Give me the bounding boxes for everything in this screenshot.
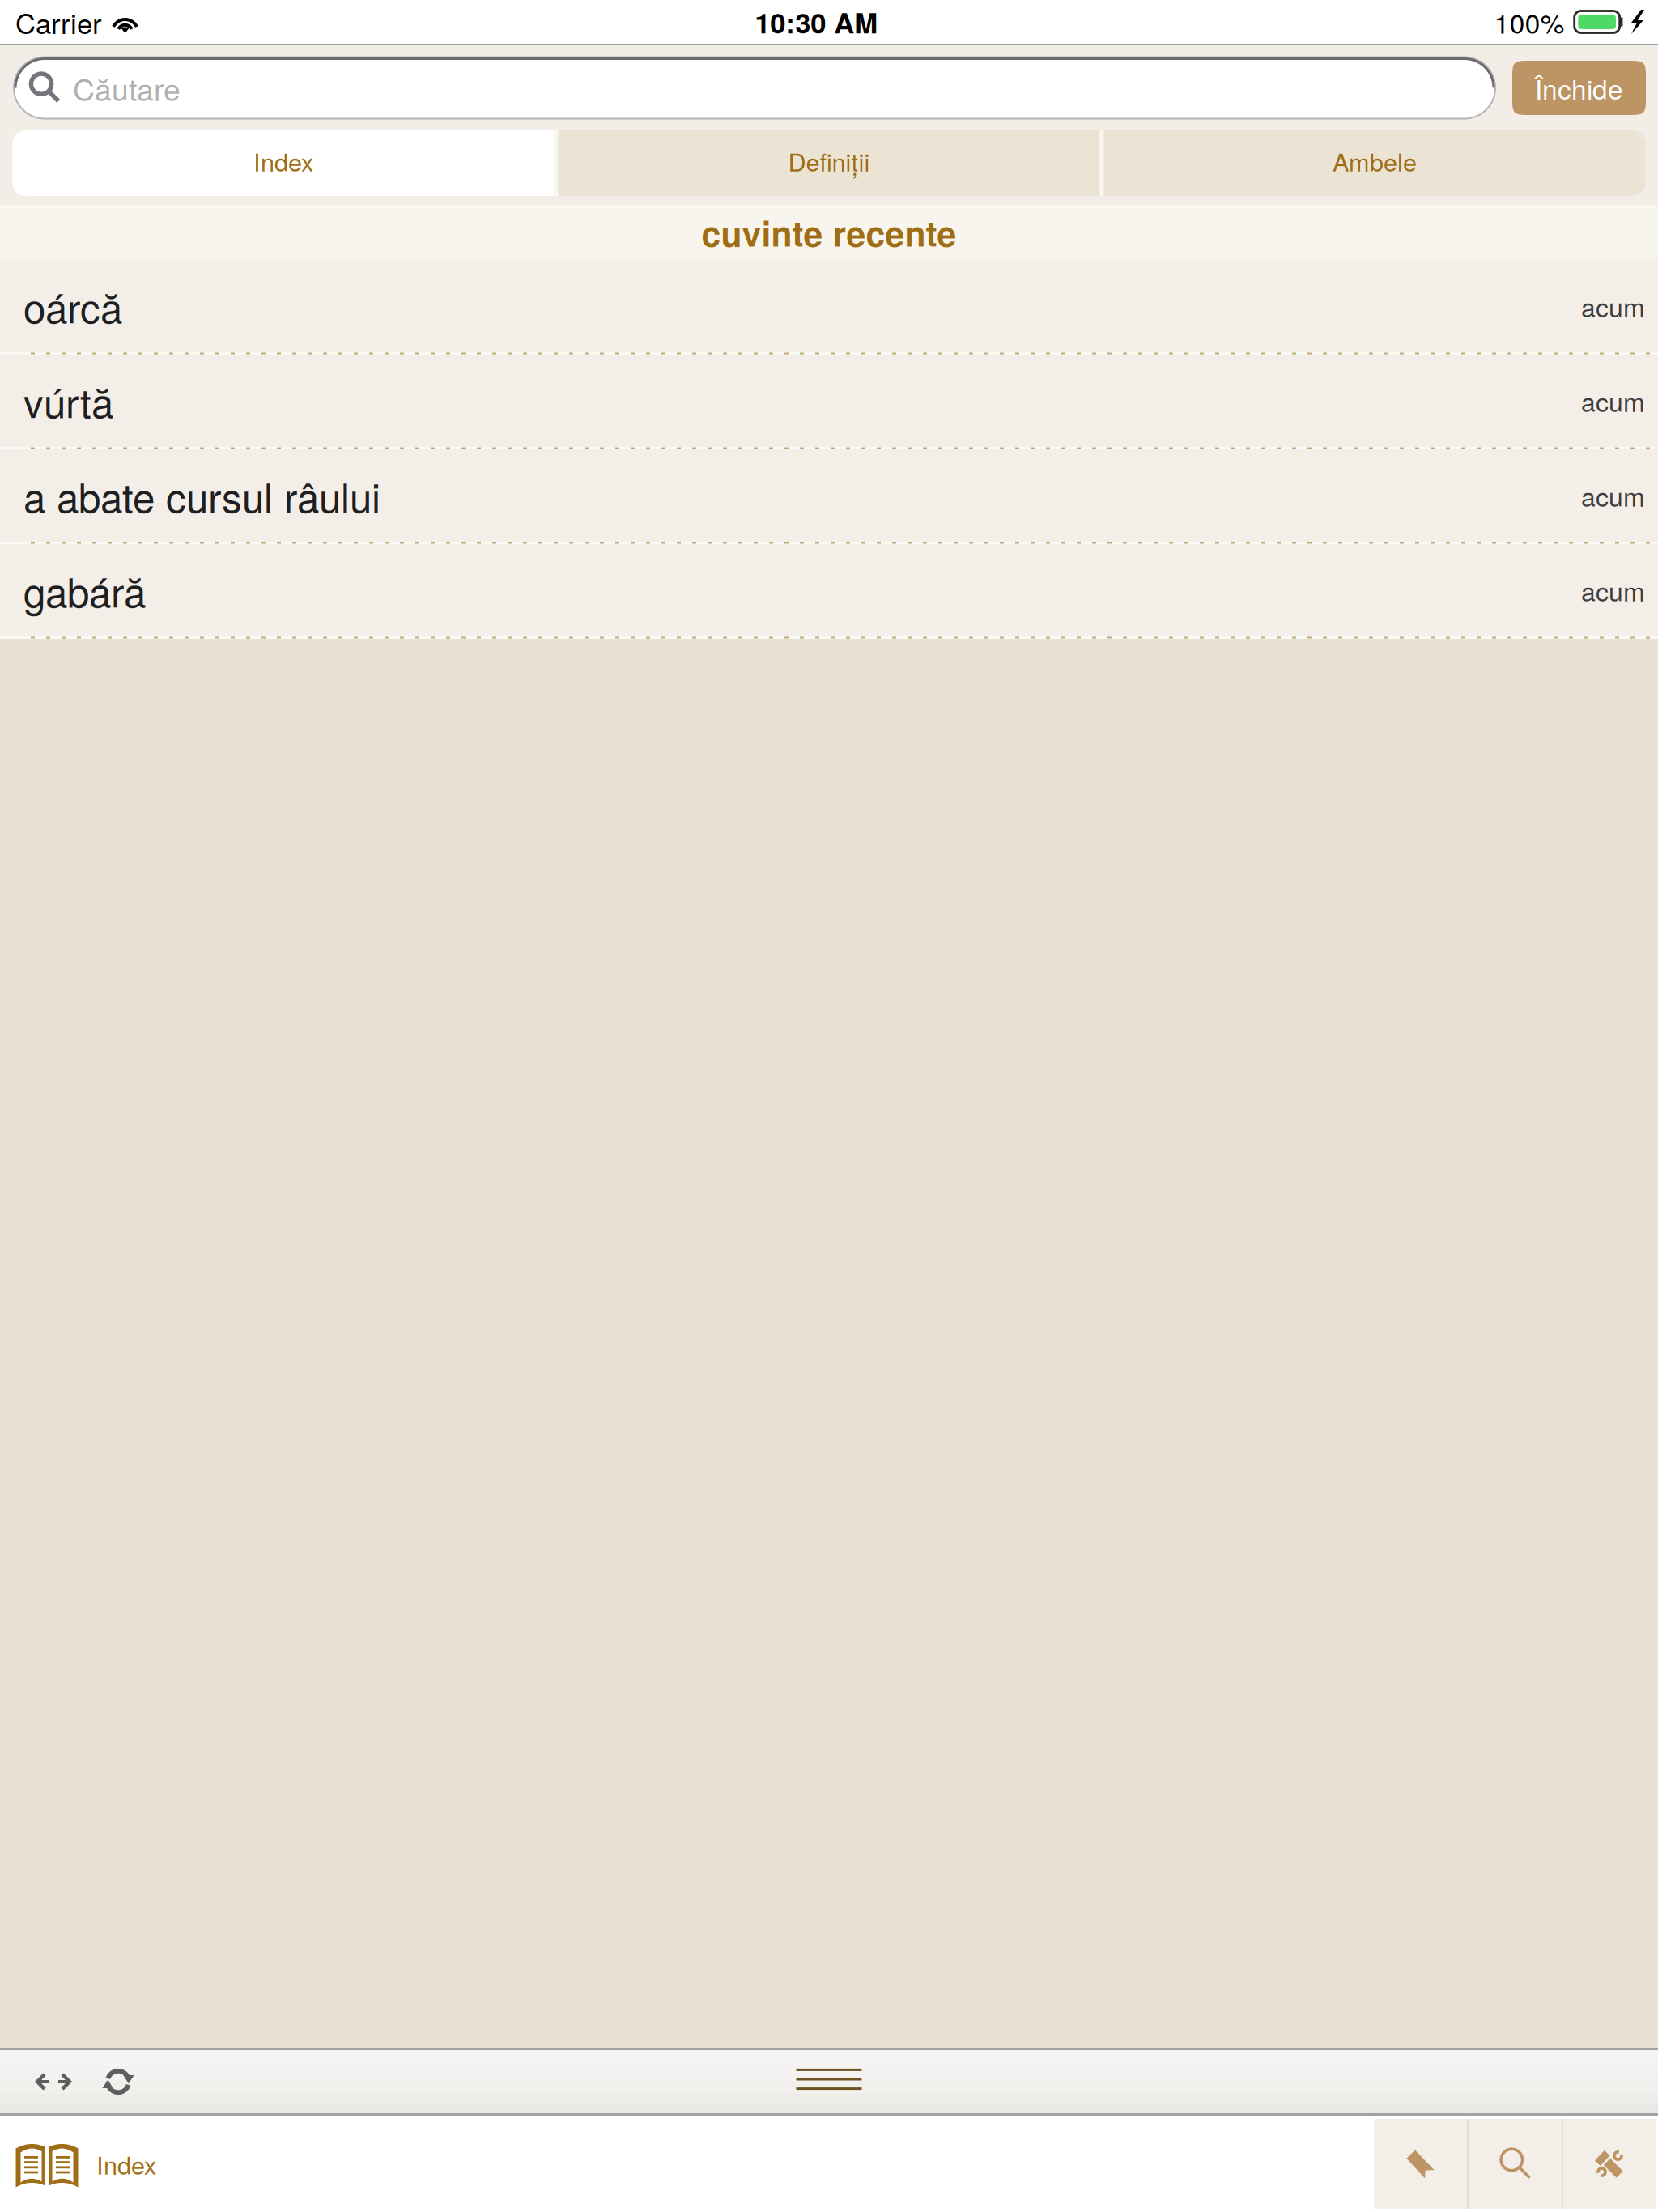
- staticText: acum: [1581, 572, 1645, 609]
- staticText: oárcă: [23, 277, 122, 335]
- staticText: acum: [1581, 288, 1645, 325]
- staticText: Căutare: [73, 66, 181, 110]
- button[interactable]: Search: [1469, 2119, 1562, 2209]
- button[interactable]: Bookmarks: [1374, 2119, 1467, 2209]
- button[interactable]: gabáră: [0, 544, 1658, 639]
- button[interactable]: Previous or next field: [20, 2050, 87, 2113]
- staticText: acum: [1581, 382, 1645, 419]
- button[interactable]: Ambele: [1104, 130, 1645, 196]
- staticText: Index: [253, 143, 313, 178]
- staticText: 10:30 AM: [755, 2, 878, 42]
- staticText: Ambele: [1333, 143, 1417, 178]
- staticText: acum: [1581, 477, 1645, 514]
- button[interactable]: Tools: [1563, 2119, 1656, 2209]
- button[interactable]: Index: [13, 130, 554, 196]
- staticText: Index: [96, 2146, 156, 2182]
- button[interactable]: Definiții: [558, 130, 1100, 196]
- staticText: Definiții: [788, 143, 870, 178]
- button[interactable]: Reload: [87, 2050, 150, 2113]
- button[interactable]: Index: [0, 2116, 172, 2212]
- staticText: vúrtă: [23, 372, 113, 429]
- staticText: a abate cursul râului: [23, 467, 380, 524]
- staticText: gabáră: [23, 562, 146, 619]
- staticText: cuvinte recente: [701, 208, 957, 257]
- button[interactable]: Show index list: [776, 2050, 882, 2113]
- staticText: 100%: [1494, 3, 1565, 41]
- button[interactable]: a abate cursul râului: [0, 449, 1658, 544]
- button[interactable]: vúrtă: [0, 355, 1658, 449]
- staticText: Închide: [1535, 68, 1623, 107]
- staticText: Carrier: [15, 2, 102, 42]
- button[interactable]: Închide: [1512, 61, 1646, 115]
- button[interactable]: oárcă: [0, 260, 1658, 355]
